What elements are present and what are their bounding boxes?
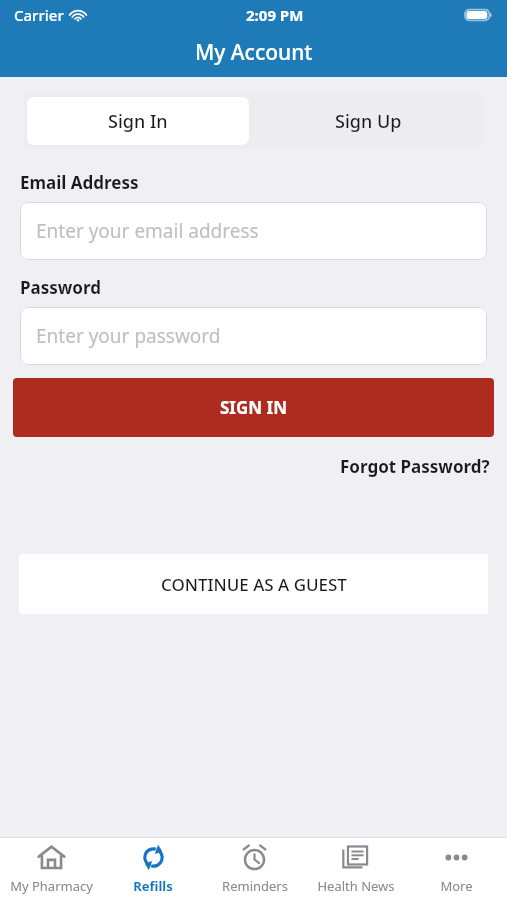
staticText: My Account <box>195 38 313 67</box>
staticText: My Pharmacy <box>10 877 93 895</box>
staticText: Password <box>20 276 101 299</box>
staticText: SIGN IN <box>220 396 287 419</box>
staticText: More <box>440 877 473 895</box>
button[interactable]: Sign In <box>27 97 249 145</box>
button[interactable]: Enter your password <box>20 307 487 365</box>
staticText: Health News <box>317 877 395 895</box>
staticText: 2:09 PM <box>246 5 304 25</box>
staticText: Sign Up <box>335 109 402 134</box>
button[interactable]: Health News <box>305 838 406 900</box>
staticText: Email Address <box>20 171 139 194</box>
button[interactable]: Enter your email address <box>20 202 487 260</box>
button[interactable]: CONTINUE AS A GUEST <box>19 554 488 614</box>
button[interactable]: SIGN IN <box>13 378 494 437</box>
staticText: CONTINUE AS A GUEST <box>161 573 347 596</box>
button[interactable]: Sign Up <box>253 93 484 149</box>
staticText: Refills <box>133 877 173 895</box>
button[interactable]: Refills <box>102 838 204 900</box>
staticText: Sign In <box>108 109 168 134</box>
staticText: Forgot Password? <box>340 455 490 478</box>
staticText: Enter your email address <box>36 218 259 244</box>
button[interactable]: More <box>406 838 507 900</box>
staticText: Carrier <box>14 5 64 25</box>
staticText: Reminders <box>222 877 288 895</box>
button[interactable]: My Pharmacy <box>0 838 102 900</box>
button[interactable]: Forgot Password? <box>336 451 494 482</box>
button[interactable]: Reminders <box>204 838 305 900</box>
staticText: Enter your password <box>36 323 221 349</box>
